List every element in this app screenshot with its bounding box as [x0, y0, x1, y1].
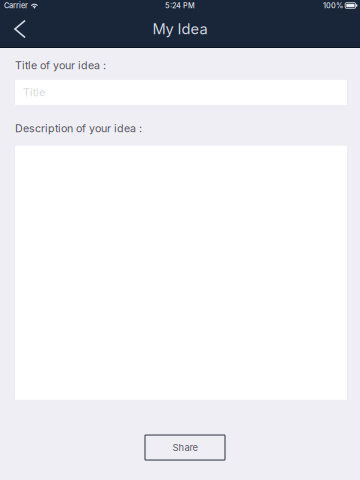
button[interactable]: Share — [145, 435, 225, 460]
staticText: Title of your idea : — [15, 59, 106, 72]
staticText: Share — [172, 442, 197, 453]
button[interactable]: Back — [3, 13, 37, 45]
staticText: Carrier — [4, 1, 28, 10]
staticText: 5:24 PM — [165, 1, 195, 10]
staticText: Title — [23, 86, 45, 99]
staticText: 100% — [323, 1, 343, 10]
staticText: Description of your idea : — [15, 122, 142, 135]
staticText: My Idea — [152, 20, 207, 38]
